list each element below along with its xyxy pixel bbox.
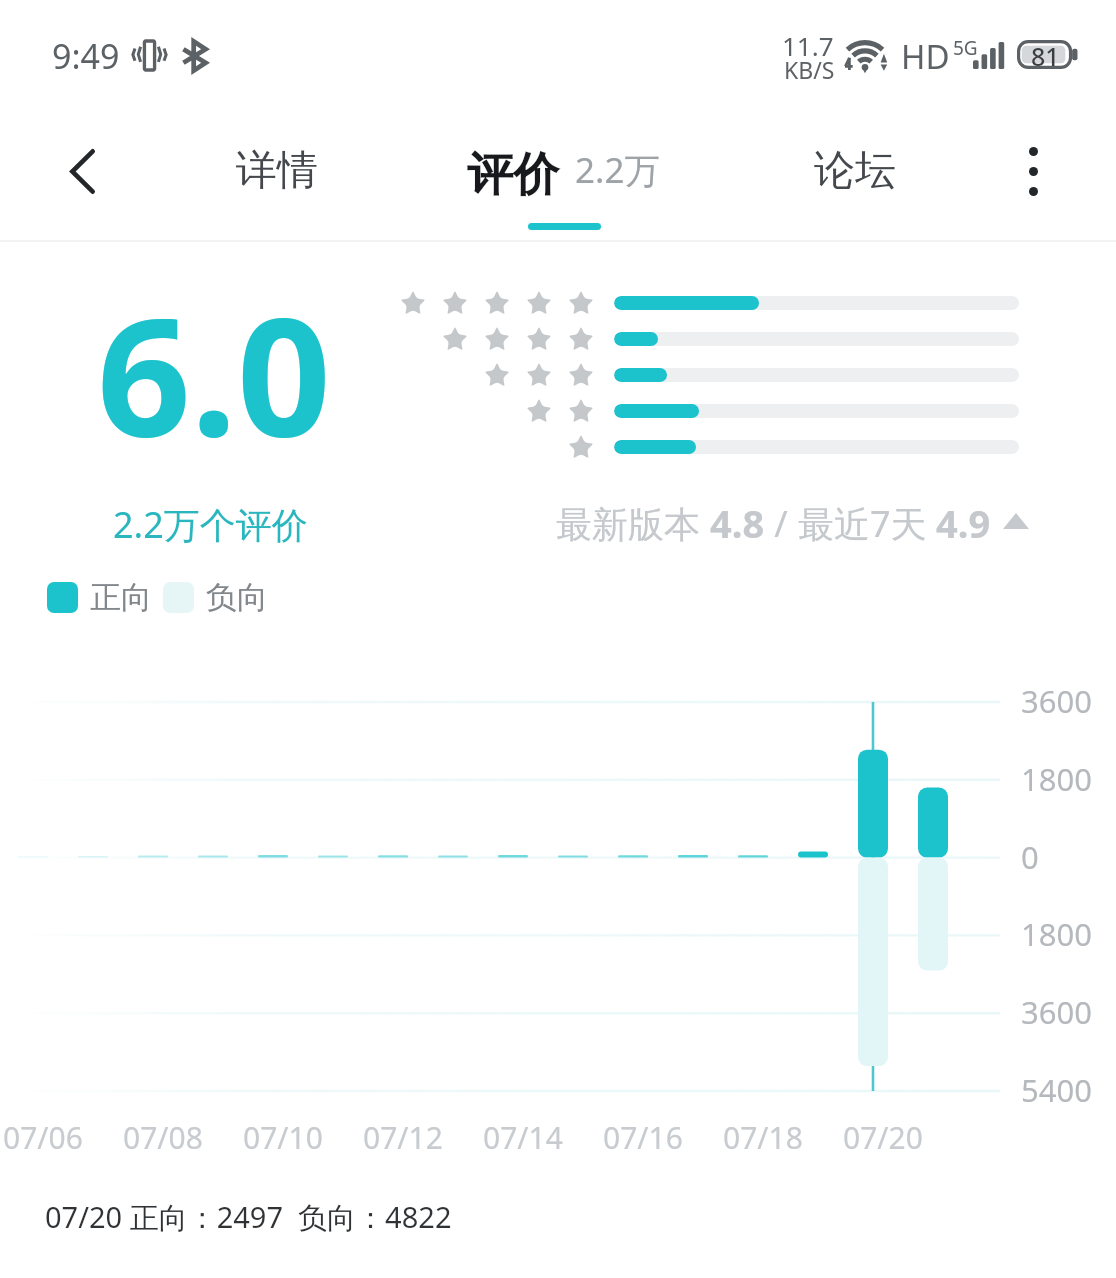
staticText: 07/18 (723, 1117, 803, 1158)
staticText: 最近7天 (798, 499, 936, 548)
staticText: 07/06 (3, 1117, 83, 1158)
staticText: KB/S (784, 54, 835, 85)
staticText: 2.2万个评价 (113, 500, 308, 549)
staticText: 07/16 (603, 1117, 683, 1158)
staticText: 6.0 (97, 261, 331, 484)
staticText: 1800 (1021, 758, 1092, 800)
button[interactable]: 详情 (200, 127, 354, 215)
staticText: 论坛 (814, 145, 896, 197)
button[interactable]: 评价 (439, 130, 686, 220)
staticText: 07/08 (123, 1117, 203, 1158)
staticText: 07/10 (243, 1117, 323, 1158)
staticText: 81 (1031, 39, 1060, 68)
staticText: 07/12 (363, 1117, 443, 1158)
staticText: 负向 (206, 578, 268, 617)
staticText: 07/20 正向：2497 负向：4822 (45, 1197, 452, 1237)
staticText: 5G (953, 35, 978, 61)
staticText: 1800 (1021, 913, 1092, 955)
staticText: 4.9 (936, 497, 991, 549)
staticText: 11.7 (782, 28, 834, 63)
button[interactable]: More options (990, 128, 1076, 214)
staticText: 07/14 (483, 1117, 563, 1158)
staticText: HD (901, 34, 950, 79)
staticText: 2.2万 (575, 146, 660, 194)
button[interactable]: Back (39, 128, 125, 214)
staticText: / (765, 499, 798, 548)
staticText: 详情 (236, 145, 318, 197)
staticText: 评价 (467, 146, 559, 204)
staticText: 9:49 (52, 33, 120, 79)
staticText: 正向 (90, 578, 152, 617)
staticText: 3600 (1021, 991, 1092, 1033)
staticText: 3600 (1021, 680, 1092, 722)
staticText: 5400 (1021, 1069, 1092, 1111)
staticText: 07/20 (843, 1117, 923, 1158)
staticText: 4.8 (710, 497, 765, 549)
staticText: 0 (1021, 836, 1039, 878)
button[interactable]: 论坛 (778, 127, 932, 215)
staticText: 最新版本 (556, 499, 710, 548)
